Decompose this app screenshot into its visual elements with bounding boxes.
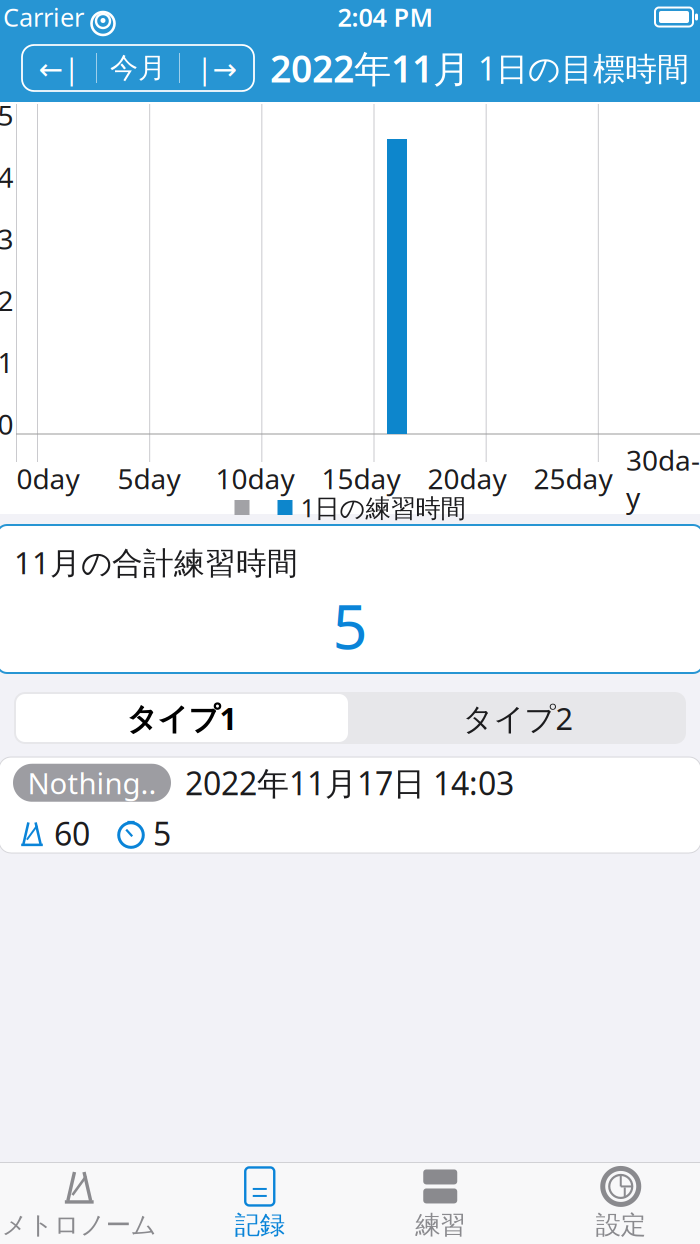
staticText: 今月 xyxy=(110,51,166,85)
staticText: 0 xyxy=(0,405,13,443)
button[interactable]: 記録 xyxy=(169,1163,350,1243)
button[interactable]: 1日の目標時間 xyxy=(478,41,689,95)
staticText: |→ xyxy=(196,48,237,87)
staticText: 5 xyxy=(153,812,171,854)
staticText: タイプ1 xyxy=(126,698,237,738)
staticText: 練習 xyxy=(415,1209,465,1240)
staticText: 15day xyxy=(321,460,400,497)
staticText: タイプ2 xyxy=(462,698,573,738)
button[interactable]: 練習 xyxy=(350,1163,530,1243)
staticText: ←| xyxy=(38,48,79,87)
button[interactable]: タイプ1 xyxy=(14,692,350,744)
staticText: 3 xyxy=(0,220,13,257)
staticText: 1日の練習時間 xyxy=(300,491,465,524)
staticText: 11月の合計練習時間 xyxy=(14,542,298,583)
staticText: 20day xyxy=(427,460,506,497)
staticText: Nothing.. xyxy=(27,763,156,802)
staticText: Carrier xyxy=(3,0,84,34)
staticText: メトロノーム xyxy=(2,1209,157,1240)
button[interactable]: 設定 xyxy=(530,1163,700,1243)
staticText: 5 xyxy=(332,585,367,666)
button[interactable]: Next month xyxy=(180,45,254,91)
staticText: 0day xyxy=(16,460,79,497)
staticText: 1日の目標時間 xyxy=(478,47,689,89)
button[interactable]: タイプ2 xyxy=(350,692,686,744)
staticText: 記録 xyxy=(235,1209,285,1240)
staticText: 1 xyxy=(0,344,13,381)
button[interactable]: Previous month xyxy=(22,45,96,91)
button[interactable]: 今月 xyxy=(97,45,179,91)
staticText: 2022年11月 xyxy=(270,43,470,93)
staticText: 10day xyxy=(215,460,294,497)
staticText: 5 xyxy=(0,96,13,134)
staticText: 2 xyxy=(0,282,13,319)
staticText: 設定 xyxy=(596,1209,646,1240)
button[interactable]: Nothing.. xyxy=(0,757,700,853)
staticText: 4 xyxy=(0,158,13,195)
staticText: 5day xyxy=(117,460,180,497)
button[interactable]: メトロノーム xyxy=(0,1163,169,1243)
staticText: 25day xyxy=(533,460,612,497)
staticText: 2:04 PM xyxy=(337,0,433,34)
staticText: 60 xyxy=(54,812,90,854)
staticText: 30day xyxy=(626,441,700,516)
staticText: 2022年11月17日 14:03 xyxy=(185,761,514,804)
